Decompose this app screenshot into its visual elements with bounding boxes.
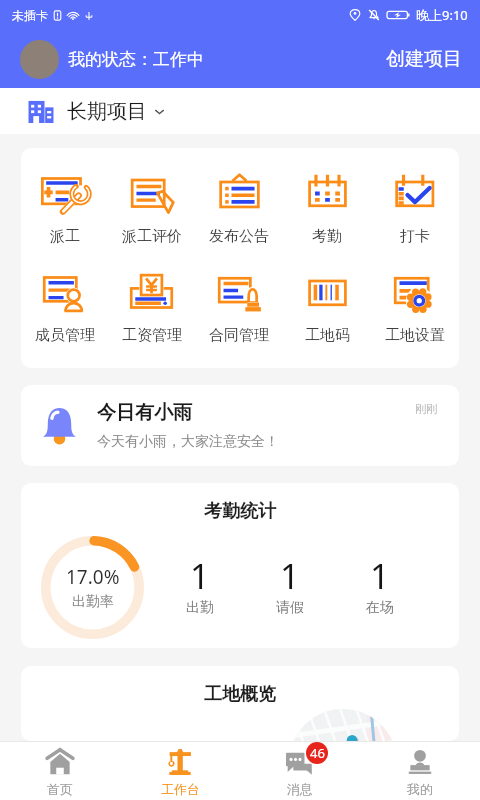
button[interactable]: 工地码: [283, 273, 371, 345]
button[interactable]: 1: [335, 554, 425, 622]
button[interactable]: 合同管理: [195, 273, 283, 345]
button[interactable]: 1: [245, 554, 335, 622]
staticText: 17.0%: [66, 564, 120, 590]
staticText: 工地码: [305, 326, 350, 345]
staticText: 合同管理: [209, 326, 269, 345]
staticText: 工地设置: [385, 326, 445, 345]
button[interactable]: 派工评价: [108, 174, 195, 246]
staticText: 工作台: [161, 781, 200, 797]
staticText: 首页: [47, 781, 73, 797]
staticText: 请假: [276, 599, 304, 617]
staticText: 1: [190, 553, 210, 599]
button[interactable]: 派工: [21, 174, 108, 246]
staticText: 1: [370, 553, 390, 599]
button[interactable]: 工资管理: [108, 273, 195, 345]
button[interactable]: 头像: [20, 40, 59, 79]
staticText: 发布公告: [209, 227, 269, 246]
button[interactable]: 消息: [240, 746, 360, 800]
button[interactable]: 我的: [360, 746, 480, 800]
button[interactable]: 1: [154, 554, 245, 622]
staticText: 消息: [287, 781, 313, 797]
staticText: 我的状态：工作中: [68, 49, 204, 70]
staticText: 刚刚: [415, 402, 437, 416]
staticText: 成员管理: [35, 326, 95, 345]
staticText: 未插卡: [12, 8, 48, 23]
button[interactable]: 今日有小雨: [21, 385, 459, 466]
staticText: 打卡: [400, 227, 430, 246]
button[interactable]: 发布公告: [195, 174, 283, 246]
staticText: 晚上9:10: [416, 6, 468, 24]
staticText: 考勤统计: [21, 500, 459, 523]
staticText: 长期项目: [67, 99, 147, 124]
button[interactable]: 打卡: [371, 174, 459, 246]
staticText: 创建项目: [386, 47, 462, 71]
staticText: 今天有小雨，大家注意安全！: [97, 433, 279, 451]
button[interactable]: 首页: [0, 746, 120, 800]
staticText: 在场: [366, 599, 394, 617]
staticText: 46: [310, 744, 325, 762]
staticText: 派工评价: [122, 227, 182, 246]
button[interactable]: 我的状态：工作中: [68, 49, 386, 70]
button[interactable]: 工作台: [120, 746, 240, 800]
staticText: 我的: [407, 781, 433, 797]
staticText: 出勤: [186, 599, 214, 617]
staticText: 工资管理: [122, 326, 182, 345]
staticText: 考勤: [312, 227, 342, 246]
staticText: 1: [280, 553, 300, 599]
staticText: 出勤率: [72, 593, 114, 611]
button[interactable]: 考勤: [283, 174, 371, 246]
staticText: 今日有小雨: [97, 401, 192, 425]
button[interactable]: 长期项目: [25, 88, 480, 134]
button[interactable]: 工地设置: [371, 273, 459, 345]
button[interactable]: 创建项目: [386, 47, 462, 71]
button[interactable]: 成员管理: [21, 273, 108, 345]
staticText: 工地概览: [21, 683, 459, 706]
staticText: 派工: [50, 227, 80, 246]
